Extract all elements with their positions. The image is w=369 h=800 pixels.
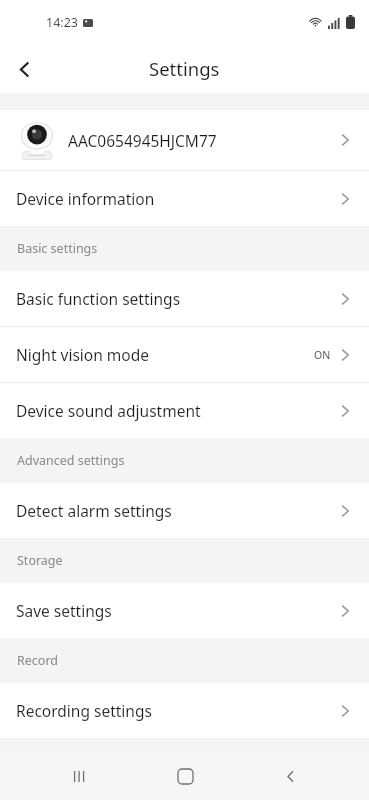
staticText: Device information — [16, 188, 337, 209]
staticText: ON — [314, 348, 331, 362]
staticText: Detect alarm settings — [16, 500, 337, 521]
staticText: Storage — [17, 552, 63, 569]
button[interactable]: Detect alarm settings — [0, 483, 369, 538]
button[interactable]: Basic function settings — [0, 271, 369, 326]
staticText: Basic function settings — [16, 288, 337, 309]
staticText: Night vision mode — [16, 344, 314, 365]
button[interactable]: Night vision mode — [0, 327, 369, 382]
button[interactable]: Recent apps — [52, 752, 106, 800]
staticText: AAC0654945HJCM77 — [68, 130, 337, 151]
staticText: 14:23 — [46, 14, 78, 31]
staticText: Basic settings — [17, 240, 98, 257]
button[interactable]: Recording settings — [0, 683, 369, 738]
button[interactable]: Save settings — [0, 583, 369, 638]
button[interactable]: Back — [263, 752, 317, 800]
staticText: Record — [17, 652, 58, 669]
staticText: Recording settings — [16, 700, 337, 721]
button[interactable]: Device sound adjustment — [0, 383, 369, 438]
staticText: Device sound adjustment — [16, 400, 337, 421]
staticText: Save settings — [16, 600, 337, 621]
button[interactable]: AAC0654945HJCM77 — [0, 110, 369, 170]
button[interactable]: Back — [0, 45, 48, 93]
staticText: Settings — [149, 56, 220, 81]
button[interactable]: Home — [158, 752, 212, 800]
staticText: Advanced settings — [17, 452, 125, 469]
button[interactable]: Device information — [0, 171, 369, 226]
